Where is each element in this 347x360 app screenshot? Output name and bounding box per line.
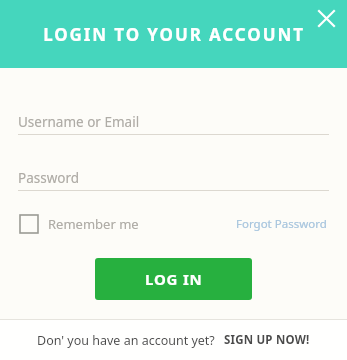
button[interactable]: Password — [18, 166, 329, 190]
button[interactable]: Forgot Password — [234, 212, 329, 236]
button[interactable]: Close — [311, 3, 341, 33]
staticText: Remember me — [48, 215, 139, 233]
staticText: Forgot Password — [236, 216, 327, 232]
button[interactable]: Username or Email — [18, 110, 329, 134]
staticText: Username or Email — [18, 113, 140, 131]
staticText: LOGIN TO YOUR ACCOUNT — [43, 23, 305, 46]
staticText: SIGN UP NOW! — [224, 332, 310, 348]
staticText: Don' you have an account yet? — [37, 332, 215, 349]
button[interactable]: SIGN UP NOW! — [223, 328, 311, 352]
staticText: Password — [18, 169, 80, 187]
button[interactable]: LOG IN — [95, 258, 252, 300]
button[interactable]: Remember me — [18, 212, 141, 236]
staticText: LOG IN — [145, 269, 203, 289]
